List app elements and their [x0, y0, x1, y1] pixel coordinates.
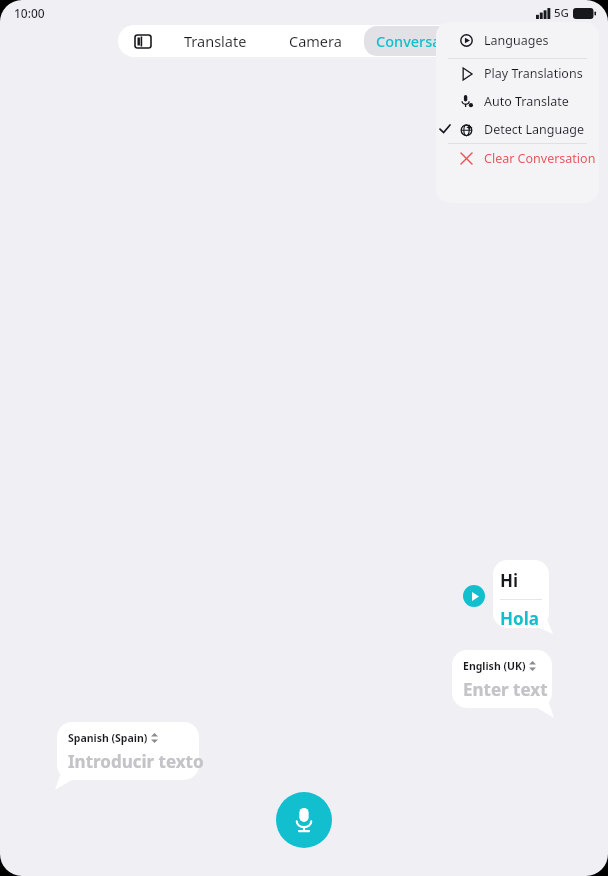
- button[interactable]: Favourites: [491, 25, 518, 57]
- button[interactable]: Microphone: [276, 792, 332, 848]
- staticText: 10:00: [14, 5, 45, 21]
- staticText: Hi: [500, 569, 519, 592]
- staticText: 5G: [554, 5, 569, 21]
- staticText: Languages: [484, 32, 549, 49]
- button[interactable]: Translate: [172, 26, 259, 56]
- button[interactable]: Clear Conversation: [436, 144, 599, 172]
- staticText: Detect Language: [484, 121, 584, 138]
- staticText: Translate: [184, 31, 247, 51]
- button[interactable]: Camera: [277, 26, 354, 56]
- staticText: Hola: [500, 607, 539, 630]
- button[interactable]: Play: [463, 585, 485, 607]
- button[interactable]: Spanish (Spain): [57, 722, 199, 790]
- button[interactable]: Sidebar: [130, 28, 156, 54]
- staticText: Clear Conversation: [484, 150, 596, 167]
- staticText: English (UK): [463, 659, 526, 673]
- button[interactable]: Auto Translate: [436, 87, 599, 115]
- staticText: Spanish (Spain): [68, 731, 148, 745]
- button[interactable]: Play Translations: [436, 59, 599, 87]
- staticText: Introducir texto: [68, 750, 204, 773]
- staticText: Enter text: [463, 678, 548, 701]
- button[interactable]: Conversation: [364, 26, 481, 56]
- staticText: Camera: [289, 31, 342, 51]
- staticText: Conversation: [376, 31, 469, 51]
- staticText: Auto Translate: [484, 93, 569, 110]
- button[interactable]: English (UK): [452, 650, 552, 718]
- button[interactable]: Detect Language: [436, 115, 599, 143]
- staticText: Play Translations: [484, 65, 583, 82]
- staticText: Favourites: [503, 30, 506, 52]
- button[interactable]: Languages: [436, 22, 599, 58]
